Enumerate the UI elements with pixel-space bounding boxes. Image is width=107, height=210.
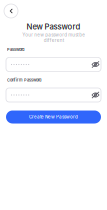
button[interactable]: Show password xyxy=(92,61,99,68)
button[interactable]: Create New Password xyxy=(6,110,101,123)
button[interactable]: Back xyxy=(4,4,18,18)
staticText: New Password xyxy=(26,22,80,31)
button[interactable]: Show password xyxy=(92,91,99,98)
staticText: Password xyxy=(7,47,24,52)
staticText: Your new password must be different xyxy=(22,32,85,43)
staticText: Confirm Password xyxy=(7,77,41,82)
staticText: Create New Password xyxy=(29,114,78,120)
